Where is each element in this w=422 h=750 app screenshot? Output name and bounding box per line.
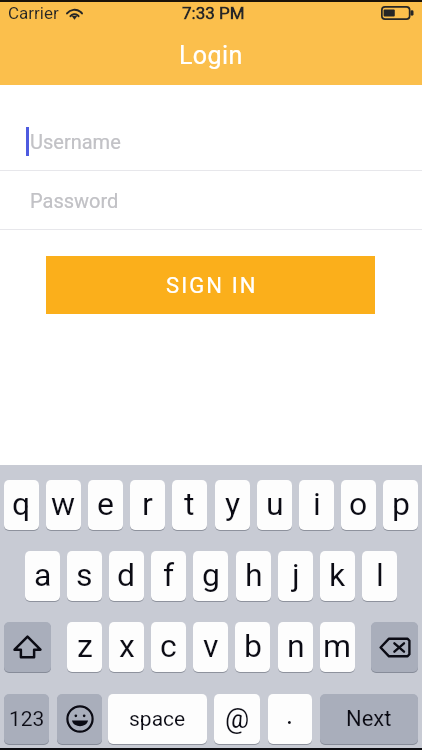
button[interactable]: Next: [320, 694, 418, 744]
staticText: SIGN IN: [166, 273, 258, 299]
staticText: z: [77, 627, 93, 665]
staticText: 123: [9, 707, 45, 732]
button[interactable]: x: [109, 622, 144, 672]
staticText: d: [117, 556, 136, 594]
staticText: h: [245, 556, 263, 594]
staticText: w: [51, 485, 76, 523]
button[interactable]: @: [214, 694, 260, 744]
button[interactable]: t: [172, 480, 207, 530]
button[interactable]: Shift: [4, 622, 51, 672]
staticText: Next: [346, 706, 392, 732]
button[interactable]: Password: [0, 171, 422, 230]
staticText: p: [392, 485, 410, 523]
staticText: Username: [30, 130, 121, 153]
button[interactable]: k: [320, 551, 355, 601]
staticText: l: [376, 556, 384, 594]
button[interactable]: c: [151, 622, 186, 672]
button[interactable]: space: [108, 694, 207, 744]
staticText: Carrier: [8, 3, 59, 23]
staticText: m: [323, 627, 352, 665]
button[interactable]: Username: [0, 111, 422, 171]
staticText: x: [119, 627, 135, 665]
button[interactable]: SIGN IN: [46, 256, 375, 314]
staticText: q: [12, 485, 31, 523]
staticText: e: [97, 485, 114, 523]
button[interactable]: m: [320, 622, 355, 672]
staticText: y: [225, 485, 241, 523]
staticText: j: [292, 556, 300, 594]
staticText: Login: [179, 41, 243, 70]
staticText: a: [34, 556, 52, 594]
button[interactable]: n: [278, 622, 313, 672]
button[interactable]: y: [215, 480, 250, 530]
staticText: space: [129, 707, 186, 732]
button[interactable]: l: [362, 551, 397, 601]
staticText: b: [244, 627, 262, 665]
button[interactable]: r: [130, 480, 165, 530]
button[interactable]: d: [109, 551, 144, 601]
button[interactable]: h: [236, 551, 271, 601]
button[interactable]: a: [25, 551, 60, 601]
button[interactable]: .: [268, 694, 312, 744]
button[interactable]: q: [4, 480, 39, 530]
staticText: i: [313, 485, 321, 523]
staticText: v: [203, 627, 219, 665]
staticText: s: [76, 556, 93, 594]
button[interactable]: p: [383, 480, 418, 530]
button[interactable]: u: [257, 480, 292, 530]
button[interactable]: o: [341, 480, 376, 530]
button[interactable]: Backspace: [371, 622, 418, 672]
staticText: g: [202, 556, 220, 594]
button[interactable]: Emoji keyboard: [57, 694, 102, 744]
staticText: k: [329, 556, 346, 594]
button[interactable]: j: [278, 551, 313, 601]
button[interactable]: i: [299, 480, 334, 530]
staticText: c: [160, 627, 177, 665]
staticText: 7:33 PM: [182, 3, 245, 23]
staticText: o: [349, 485, 368, 523]
button[interactable]: e: [88, 480, 123, 530]
button[interactable]: z: [67, 622, 102, 672]
staticText: r: [142, 485, 153, 523]
staticText: .: [286, 699, 294, 731]
staticText: f: [163, 556, 175, 594]
staticText: t: [184, 485, 195, 523]
button[interactable]: b: [235, 622, 270, 672]
button[interactable]: s: [67, 551, 102, 601]
staticText: @: [225, 703, 250, 735]
staticText: u: [266, 485, 284, 523]
staticText: n: [287, 627, 305, 665]
staticText: Password: [30, 189, 119, 212]
button[interactable]: g: [193, 551, 228, 601]
button[interactable]: w: [46, 480, 81, 530]
button[interactable]: v: [193, 622, 228, 672]
button[interactable]: f: [151, 551, 186, 601]
button[interactable]: 123: [4, 694, 49, 744]
